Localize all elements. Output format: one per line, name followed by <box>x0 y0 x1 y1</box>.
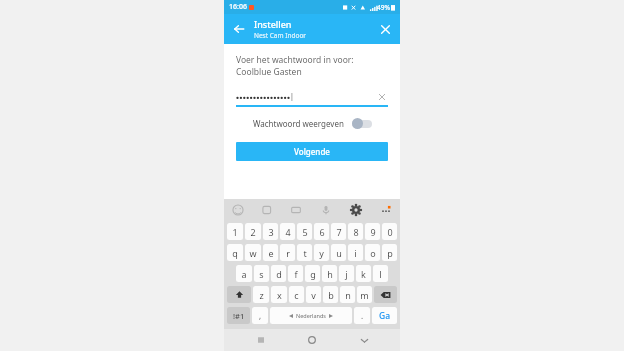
button[interactable]: Clear password <box>236 91 388 103</box>
button[interactable]: v <box>306 286 321 303</box>
staticText: v <box>311 289 316 301</box>
button[interactable]: z <box>253 286 269 303</box>
staticText: 0 <box>387 226 393 238</box>
staticText: p <box>387 247 393 259</box>
button[interactable]: Emoji <box>231 203 245 217</box>
button[interactable]: Clear password <box>376 91 388 103</box>
button[interactable]: l <box>373 265 388 282</box>
button[interactable]: r <box>280 244 295 261</box>
button[interactable]: b <box>323 286 338 303</box>
button[interactable]: w <box>245 244 261 261</box>
staticText: t <box>303 247 307 259</box>
staticText: a <box>241 268 247 280</box>
staticText: q <box>232 247 238 259</box>
staticText: j <box>345 268 348 280</box>
staticText: 6 <box>319 226 325 238</box>
button[interactable]: d <box>271 265 286 282</box>
button[interactable]: h <box>322 265 337 282</box>
button[interactable]: Stickers <box>260 203 274 217</box>
button[interactable]: e <box>263 244 278 261</box>
staticText: h <box>327 268 333 280</box>
button[interactable]: Volgende <box>236 142 388 161</box>
button[interactable]: o <box>365 244 380 261</box>
staticText: 3 <box>268 226 274 238</box>
button[interactable]: a <box>236 265 252 282</box>
staticText: 9 <box>370 226 376 238</box>
button[interactable]: Close <box>370 14 400 44</box>
staticText: , <box>259 310 262 321</box>
staticText: 7 <box>336 226 342 238</box>
button[interactable]: More options <box>379 203 393 217</box>
staticText: !#1 <box>233 311 245 321</box>
button[interactable]: n <box>340 286 355 303</box>
button[interactable]: Shift <box>227 286 251 303</box>
button[interactable]: Wachtwoord weergeven <box>236 118 388 129</box>
staticText: 8 <box>353 226 359 238</box>
button[interactable]: 4 <box>280 223 295 240</box>
staticText: r <box>286 247 290 259</box>
button[interactable]: s <box>254 265 269 282</box>
staticText: 49% <box>377 3 390 12</box>
button[interactable]: Keyboard settings <box>349 203 363 217</box>
button[interactable]: !#1 <box>227 307 250 324</box>
button[interactable]: k <box>356 265 371 282</box>
button[interactable]: 6 <box>314 223 329 240</box>
staticText: 5 <box>302 226 308 238</box>
button[interactable]: 5 <box>297 223 312 240</box>
staticText: 4 <box>285 226 291 238</box>
staticText: c <box>294 289 299 301</box>
button[interactable]: x <box>271 286 287 303</box>
button[interactable]: Back <box>224 14 254 44</box>
staticText: Volgende <box>294 146 330 157</box>
button[interactable]: Voice input <box>319 203 333 217</box>
staticText: Ga <box>379 310 391 322</box>
button[interactable]: j <box>339 265 354 282</box>
button[interactable]: Nederlands <box>270 307 352 324</box>
staticText: i <box>354 247 357 259</box>
button[interactable]: y <box>314 244 329 261</box>
staticText: u <box>336 247 342 259</box>
staticText: Nest Cam Indoor <box>254 31 307 40</box>
button[interactable]: Ga <box>372 307 397 324</box>
button[interactable]: 7 <box>331 223 346 240</box>
staticText: Nederlands <box>296 312 326 319</box>
staticText: . <box>361 310 364 321</box>
button[interactable]: p <box>382 244 397 261</box>
button[interactable]: Recents <box>246 329 276 351</box>
button[interactable]: c <box>289 286 304 303</box>
staticText: Wachtwoord weergeven <box>253 118 344 129</box>
other: Shift <box>227 286 251 303</box>
button[interactable]: Dismiss keyboard <box>349 329 379 351</box>
staticText: Instellen <box>254 18 292 30</box>
staticText: x <box>277 289 282 301</box>
other: Backspace <box>374 286 397 303</box>
staticText: k <box>361 268 366 280</box>
staticText: o <box>370 247 376 259</box>
button[interactable]: g <box>305 265 320 282</box>
button[interactable]: 0 <box>382 223 397 240</box>
button[interactable]: f <box>288 265 303 282</box>
button[interactable]: 3 <box>263 223 278 240</box>
staticText: f <box>294 268 298 280</box>
button[interactable]: q <box>227 244 243 261</box>
button[interactable]: m <box>357 286 372 303</box>
button[interactable]: Home <box>297 329 327 351</box>
button[interactable]: . <box>354 307 370 324</box>
staticText: n <box>345 289 351 301</box>
button[interactable]: i <box>348 244 363 261</box>
button[interactable]: u <box>331 244 346 261</box>
button[interactable]: Clipboard <box>289 203 303 217</box>
button[interactable]: Backspace <box>374 286 397 303</box>
button[interactable]: , <box>252 307 268 324</box>
button[interactable]: t <box>297 244 312 261</box>
staticText: w <box>249 247 257 259</box>
staticText: e <box>268 247 274 259</box>
button[interactable]: 1 <box>227 223 243 240</box>
staticText: y <box>319 247 324 259</box>
button[interactable]: 2 <box>245 223 261 240</box>
staticText: g <box>310 268 316 280</box>
button[interactable]: 9 <box>365 223 380 240</box>
button[interactable]: 8 <box>348 223 363 240</box>
staticText: 1 <box>232 226 238 238</box>
staticText: b <box>328 289 334 301</box>
